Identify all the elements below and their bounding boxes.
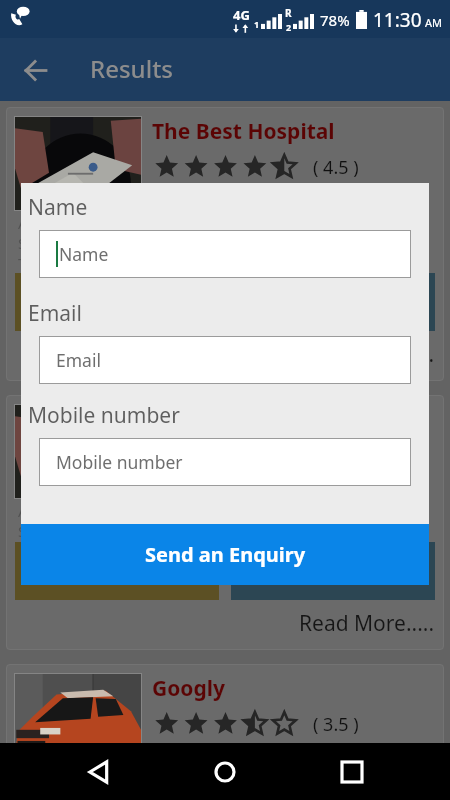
staticText: 2: [286, 21, 292, 33]
button[interactable]: City Care Clinic: [6, 395, 444, 650]
staticText: Googly: [152, 674, 225, 703]
button[interactable]: Read More.....: [299, 340, 436, 369]
staticText: City Care Clinic: [152, 405, 309, 434]
staticText: Mobile number: [28, 401, 180, 430]
staticText: Enquiry: [301, 560, 366, 583]
staticText: Address : 24 Park Street, Near City Mall: [18, 770, 292, 788]
button[interactable]: Name: [39, 230, 411, 278]
staticText: Name: [59, 242, 109, 266]
staticText: Results: [90, 52, 173, 85]
staticText: 11:30: [373, 7, 422, 33]
staticText: Email: [28, 299, 82, 328]
staticText: Timing : 9:00 AM - 8:00 PM, All days: [18, 253, 266, 273]
button[interactable]: Mobile number: [39, 438, 411, 486]
staticText: The Best Hospital: [152, 117, 335, 146]
staticText: Read More.....: [299, 340, 435, 369]
button[interactable]: Back: [13, 48, 57, 92]
staticText: 78%: [320, 10, 350, 30]
button[interactable]: Googly: [6, 664, 444, 800]
button[interactable]: Call Now: [15, 273, 219, 331]
button[interactable]: Send an Enquiry: [21, 524, 429, 585]
staticText: 1: [254, 18, 260, 30]
button[interactable]: Call Now: [15, 542, 219, 600]
staticText: Email: [56, 348, 101, 372]
staticText: Call Now: [80, 560, 155, 583]
staticText: Address : 24 Park Street, Near City Mall: [18, 213, 292, 233]
button[interactable]: Enquiry: [231, 273, 435, 331]
staticText: R: [285, 6, 292, 20]
button[interactable]: Back: [71, 744, 127, 800]
staticText: AM: [425, 15, 443, 30]
staticText: Name: [28, 193, 88, 222]
button[interactable]: Recent apps: [324, 744, 380, 800]
staticText: ( 3.5 ): [313, 712, 359, 737]
staticText: Send an Enquiry: [145, 541, 306, 568]
button[interactable]: Email: [39, 336, 411, 384]
staticText: ( 4.5 ): [313, 155, 359, 180]
staticText: Read More.....: [299, 609, 435, 638]
button[interactable]: The Best Hospital: [6, 107, 444, 381]
button[interactable]: Home: [197, 744, 253, 800]
staticText: Speciality : Cardiology, Orthopaedics: [18, 233, 275, 253]
staticText: 4G: [233, 6, 250, 24]
staticText: Speciality : Cardiology, Orthopaedics: [18, 521, 275, 541]
button[interactable]: Read More.....: [299, 609, 436, 638]
staticText: Address : 24 Park Street, Near City Mall: [18, 501, 292, 521]
staticText: Mobile number: [56, 450, 183, 474]
button[interactable]: Enquiry: [231, 542, 435, 600]
